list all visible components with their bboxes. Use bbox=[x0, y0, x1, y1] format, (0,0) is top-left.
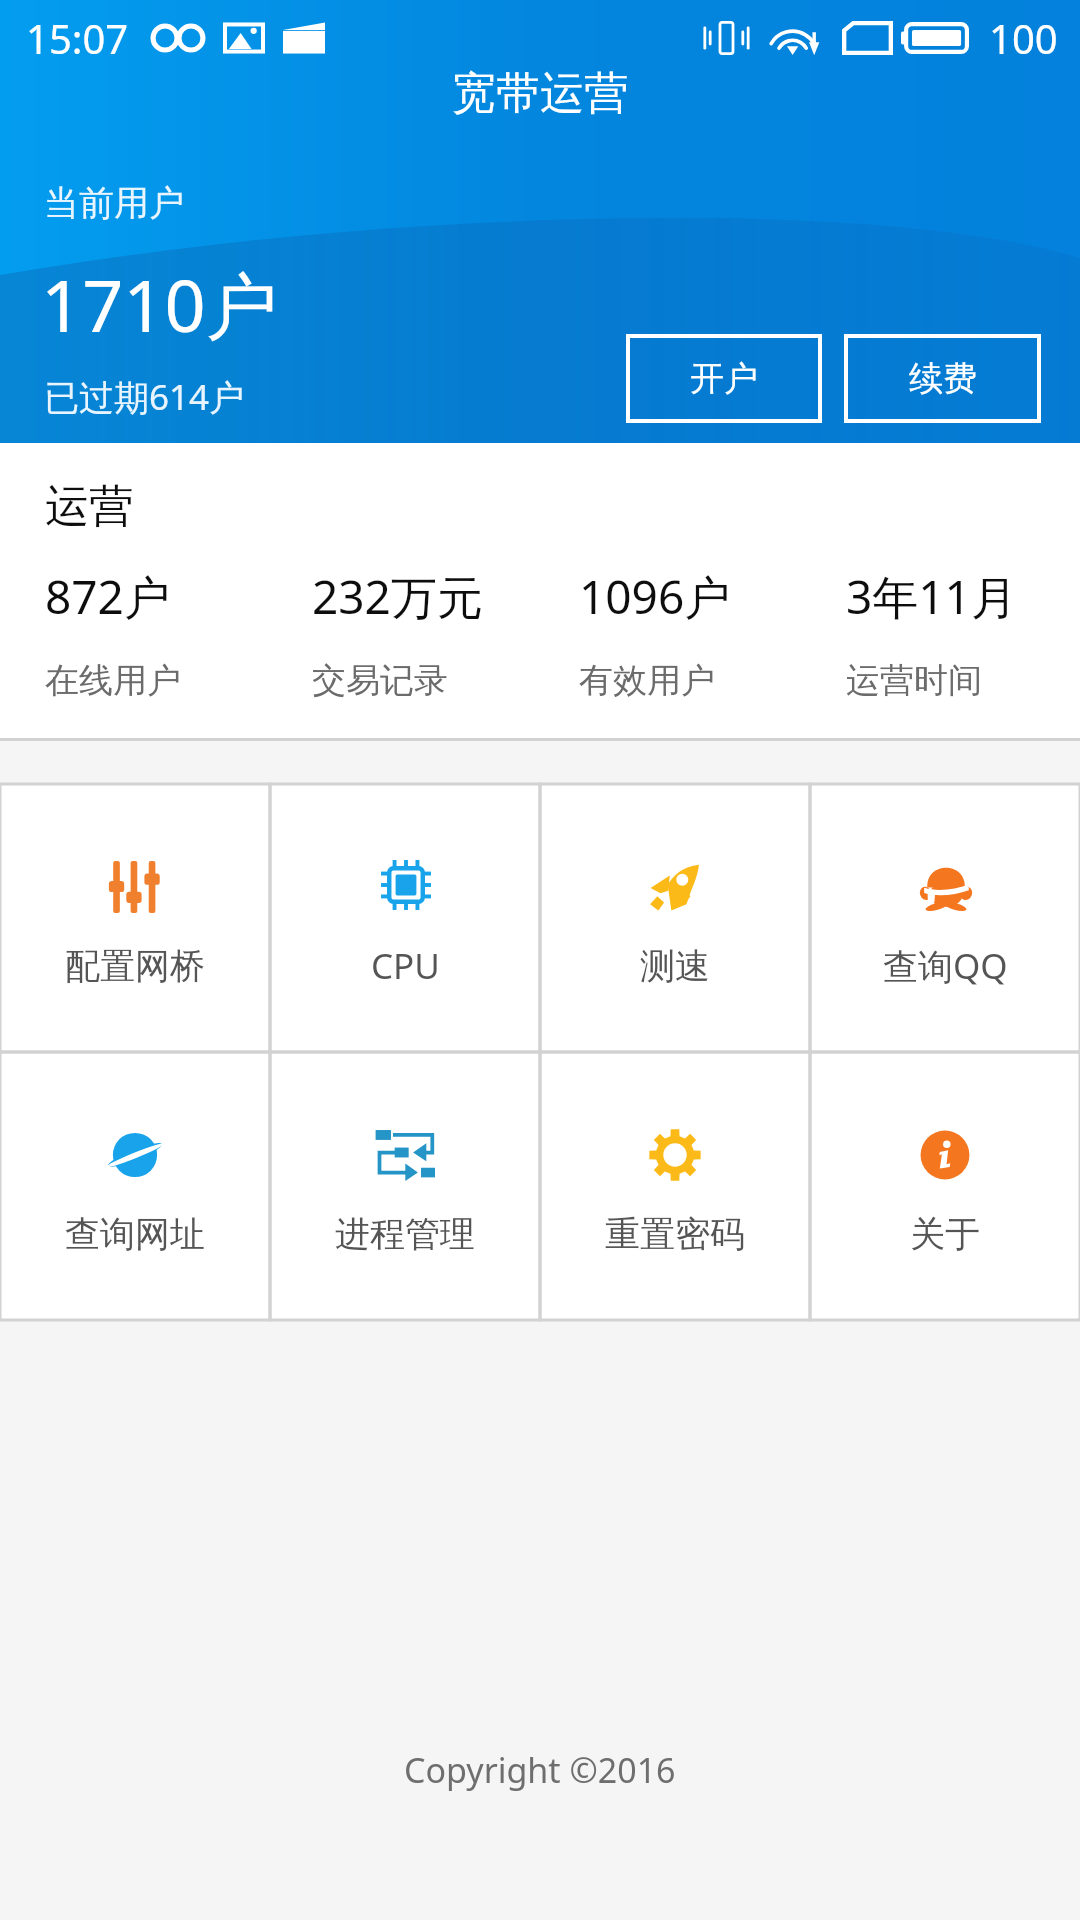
button[interactable]: 查询网址 bbox=[0, 1052, 270, 1320]
button[interactable]: 关于 bbox=[810, 1052, 1080, 1320]
staticText: 已过期614户 bbox=[44, 373, 245, 421]
staticText: 交易记录 bbox=[312, 659, 448, 702]
staticText: 宽带运营 bbox=[452, 66, 628, 121]
staticText: 在线用户 bbox=[45, 659, 181, 702]
staticText: 有效用户 bbox=[579, 659, 715, 702]
staticText: 3年11月 bbox=[846, 565, 1017, 628]
staticText: 1710户 bbox=[41, 255, 278, 353]
staticText: 查询网址 bbox=[65, 1212, 205, 1256]
button[interactable]: 续费 bbox=[846, 336, 1039, 421]
staticText: 872户 bbox=[45, 565, 170, 628]
button[interactable]: CPU bbox=[270, 784, 540, 1052]
staticText: 查询QQ bbox=[883, 942, 1008, 990]
staticText: 15:07 bbox=[26, 11, 129, 65]
staticText: 进程管理 bbox=[335, 1212, 475, 1256]
staticText: Copyright ©2016 bbox=[404, 1747, 676, 1793]
staticText: 关于 bbox=[910, 1212, 980, 1256]
staticText: 当前用户 bbox=[44, 181, 184, 225]
staticText: 1096户 bbox=[579, 565, 731, 628]
staticText: 100 bbox=[989, 11, 1058, 65]
button[interactable]: 测速 bbox=[540, 784, 810, 1052]
staticText: 运营时间 bbox=[846, 659, 982, 702]
staticText: 重置密码 bbox=[605, 1212, 745, 1256]
button[interactable]: 进程管理 bbox=[270, 1052, 540, 1320]
button[interactable]: 重置密码 bbox=[540, 1052, 810, 1320]
staticText: 运营 bbox=[45, 479, 133, 534]
staticText: 测速 bbox=[640, 944, 710, 988]
button[interactable]: 开户 bbox=[628, 336, 820, 421]
staticText: 232万元 bbox=[312, 565, 483, 628]
staticText: 续费 bbox=[909, 357, 977, 400]
button[interactable]: 查询QQ bbox=[810, 784, 1080, 1052]
button[interactable]: 配置网桥 bbox=[0, 784, 270, 1052]
staticText: 开户 bbox=[690, 357, 758, 400]
staticText: 配置网桥 bbox=[65, 944, 205, 988]
staticText: CPU bbox=[371, 942, 440, 990]
